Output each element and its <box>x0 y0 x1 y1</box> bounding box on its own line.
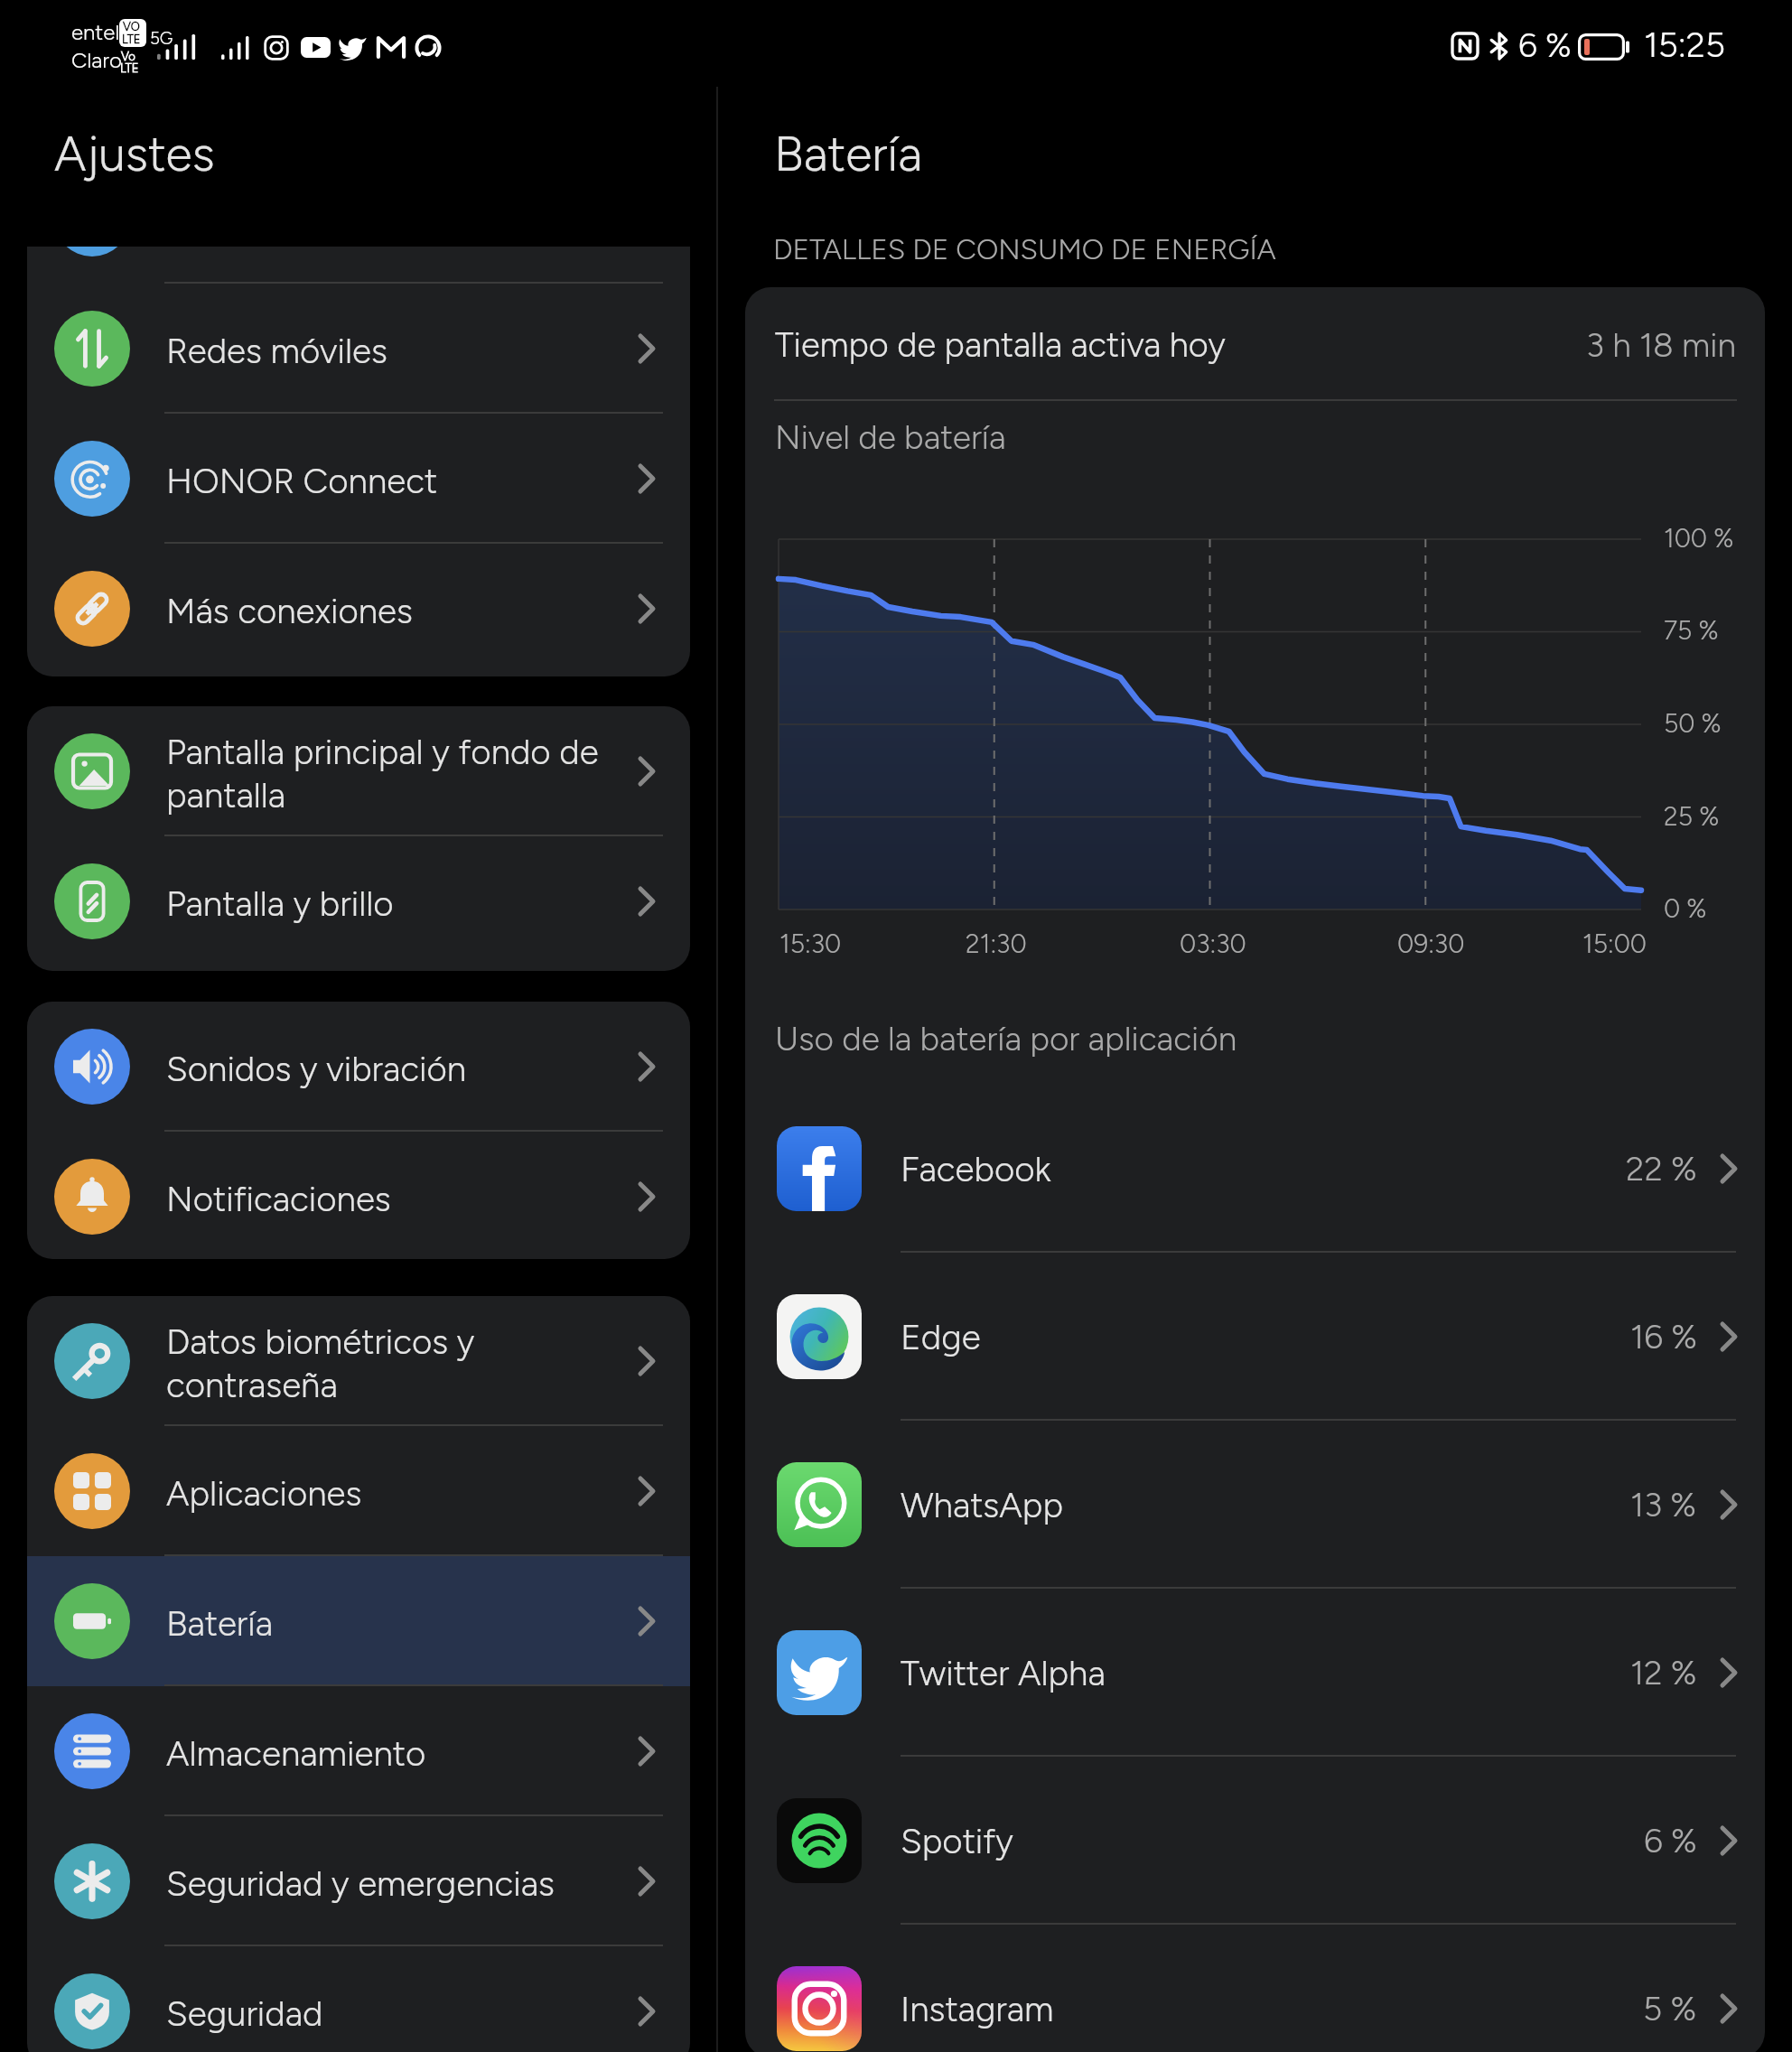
staticText: Más conexiones <box>166 590 618 631</box>
staticText: Facebook <box>901 1148 1051 1189</box>
button[interactable]: Más conexiones <box>27 544 690 674</box>
staticText: 03:30 <box>1180 928 1246 959</box>
staticText: 22 % <box>1626 1149 1697 1189</box>
staticText: 6 % <box>1518 25 1572 65</box>
staticText: Batería <box>774 125 922 182</box>
staticText: Ajustes <box>54 125 215 182</box>
button[interactable]: Datos biométricos y contraseña <box>27 1296 690 1426</box>
staticText: LTE <box>120 61 139 76</box>
staticText: Spotify <box>901 1820 1013 1861</box>
button[interactable]: Twitter Alpha <box>745 1589 1765 1757</box>
staticText: Instagram <box>901 1988 1054 2029</box>
button[interactable]: Almacenamiento <box>27 1686 690 1816</box>
button[interactable]: Pantalla y brillo <box>27 836 690 966</box>
staticText: Pantalla y brillo <box>166 882 618 924</box>
staticText: Notificaciones <box>166 1178 618 1219</box>
staticText: Redes móviles <box>166 330 618 371</box>
staticText: 16 % <box>1630 1317 1697 1357</box>
button[interactable]: Wi-Fi <box>27 247 690 284</box>
staticText: Pantalla principal y fondo de pantalla <box>166 731 618 816</box>
staticText: DETALLES DE CONSUMO DE ENERGÍA <box>773 232 1276 266</box>
staticText: 15:25 <box>1644 23 1726 65</box>
button[interactable]: Seguridad <box>27 1946 690 2052</box>
staticText: Twitter Alpha <box>901 1652 1106 1693</box>
staticText: VO <box>123 20 140 34</box>
staticText: 5 % <box>1643 1989 1697 2029</box>
staticText: Tiempo de pantalla activa hoy <box>775 324 1226 366</box>
staticText: Sonidos y vibración <box>166 1048 618 1089</box>
staticText: WhatsApp <box>901 1484 1063 1525</box>
staticText: Edge <box>901 1316 981 1357</box>
staticText: 13 % <box>1630 1485 1697 1525</box>
staticText: 21:30 <box>966 928 1027 959</box>
button[interactable]: Redes móviles <box>27 284 690 414</box>
staticText: 100 % <box>1664 523 1734 554</box>
staticText: Aplicaciones <box>166 1472 618 1514</box>
button[interactable]: Instagram <box>745 1925 1765 2052</box>
button[interactable]: Sonidos y vibración <box>27 1002 690 1132</box>
button[interactable]: Pantalla principal y fondo de pantalla <box>27 706 690 836</box>
staticText: LTE <box>122 33 141 47</box>
button[interactable]: Aplicaciones <box>27 1426 690 1556</box>
staticText: Nivel de batería <box>775 417 1006 457</box>
staticText: HONOR Connect <box>166 460 618 501</box>
button[interactable]: Notificaciones <box>27 1132 690 1259</box>
button[interactable]: WhatsApp <box>745 1421 1765 1589</box>
staticText: 6 % <box>1644 1821 1697 1861</box>
staticText: 25 % <box>1664 801 1720 832</box>
staticText: 12 % <box>1630 1653 1697 1693</box>
staticText: 15:30 <box>779 928 842 959</box>
staticText: 09:30 <box>1397 928 1465 959</box>
staticText: 0 % <box>1664 893 1707 924</box>
staticText: Seguridad y emergencias <box>166 1862 618 1904</box>
staticText: Batería <box>166 1602 618 1644</box>
staticText: Claro <box>71 47 122 73</box>
button[interactable]: Tiempo de pantalla activa hoy <box>745 300 1765 390</box>
button[interactable]: Batería <box>27 1556 690 1686</box>
staticText: entel <box>71 19 120 45</box>
staticText: Uso de la batería por aplicación <box>775 1019 1237 1059</box>
staticText: 75 % <box>1664 615 1719 646</box>
button[interactable]: Seguridad y emergencias <box>27 1816 690 1946</box>
staticText: 50 % <box>1664 708 1722 739</box>
staticText: 3 h 18 min <box>1586 325 1736 365</box>
button[interactable]: Spotify <box>745 1757 1765 1925</box>
button[interactable]: Facebook <box>745 1085 1765 1253</box>
staticText: Seguridad <box>166 1992 618 2034</box>
staticText: 5G <box>150 28 173 49</box>
staticText: Almacenamiento <box>166 1732 618 1774</box>
staticText: 15:00 <box>1582 928 1647 959</box>
button[interactable]: Edge <box>745 1253 1765 1421</box>
button[interactable]: HONOR Connect <box>27 414 690 544</box>
staticText: Vo <box>121 50 135 64</box>
staticText: Datos biométricos y contraseña <box>166 1320 618 1406</box>
